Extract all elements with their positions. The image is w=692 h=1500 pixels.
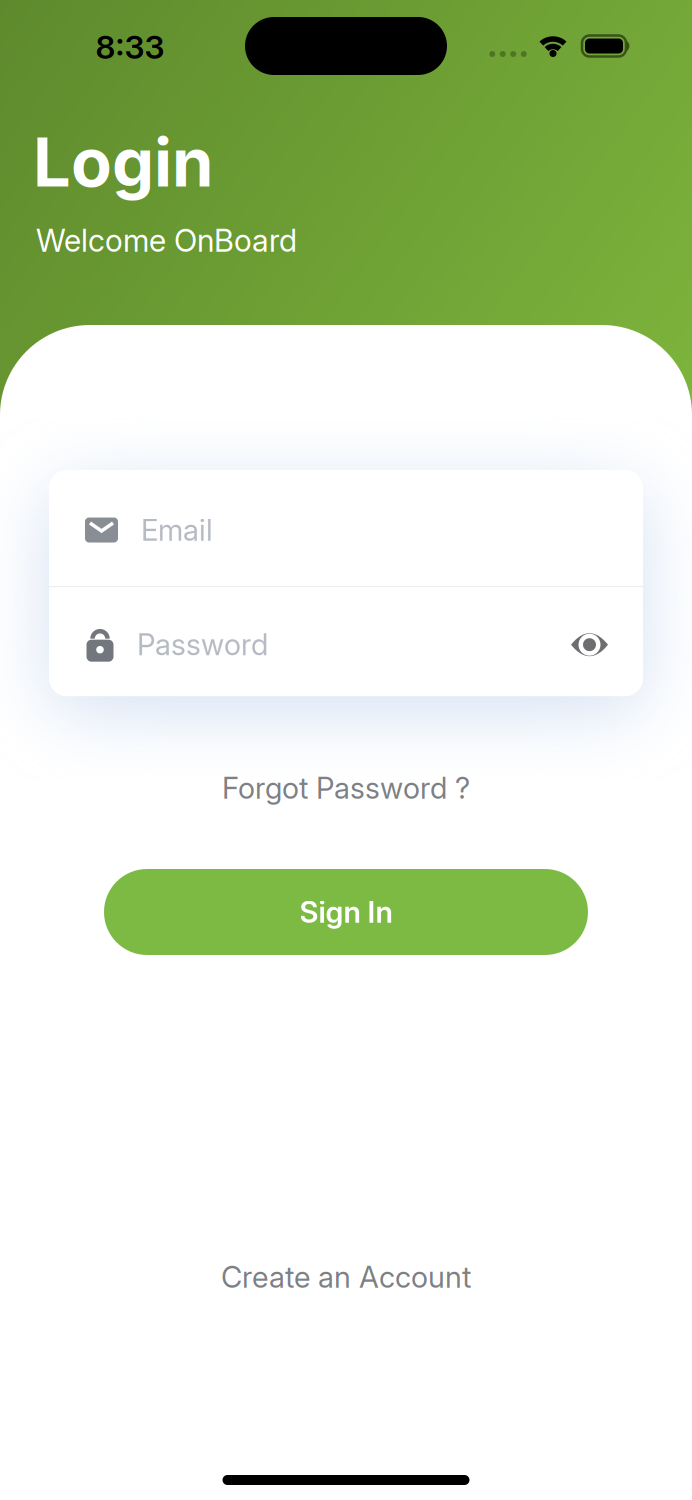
staticText: Password: [137, 627, 268, 662]
button[interactable]: Forgot Password ?: [222, 770, 470, 806]
staticText: Welcome OnBoard: [36, 222, 297, 259]
button[interactable]: Sign In: [104, 869, 588, 955]
staticText: 8:33: [95, 28, 164, 66]
staticText: Create an Account: [221, 1259, 471, 1295]
staticText: Sign In: [299, 894, 392, 930]
button[interactable]: Create an Account: [221, 1259, 471, 1295]
button[interactable]: Show password: [571, 633, 608, 657]
button[interactable]: Password: [49, 587, 643, 696]
staticText: Login: [33, 122, 214, 203]
staticText: Forgot Password ?: [222, 770, 470, 806]
staticText: Email: [141, 512, 213, 548]
button[interactable]: Email: [49, 470, 643, 586]
